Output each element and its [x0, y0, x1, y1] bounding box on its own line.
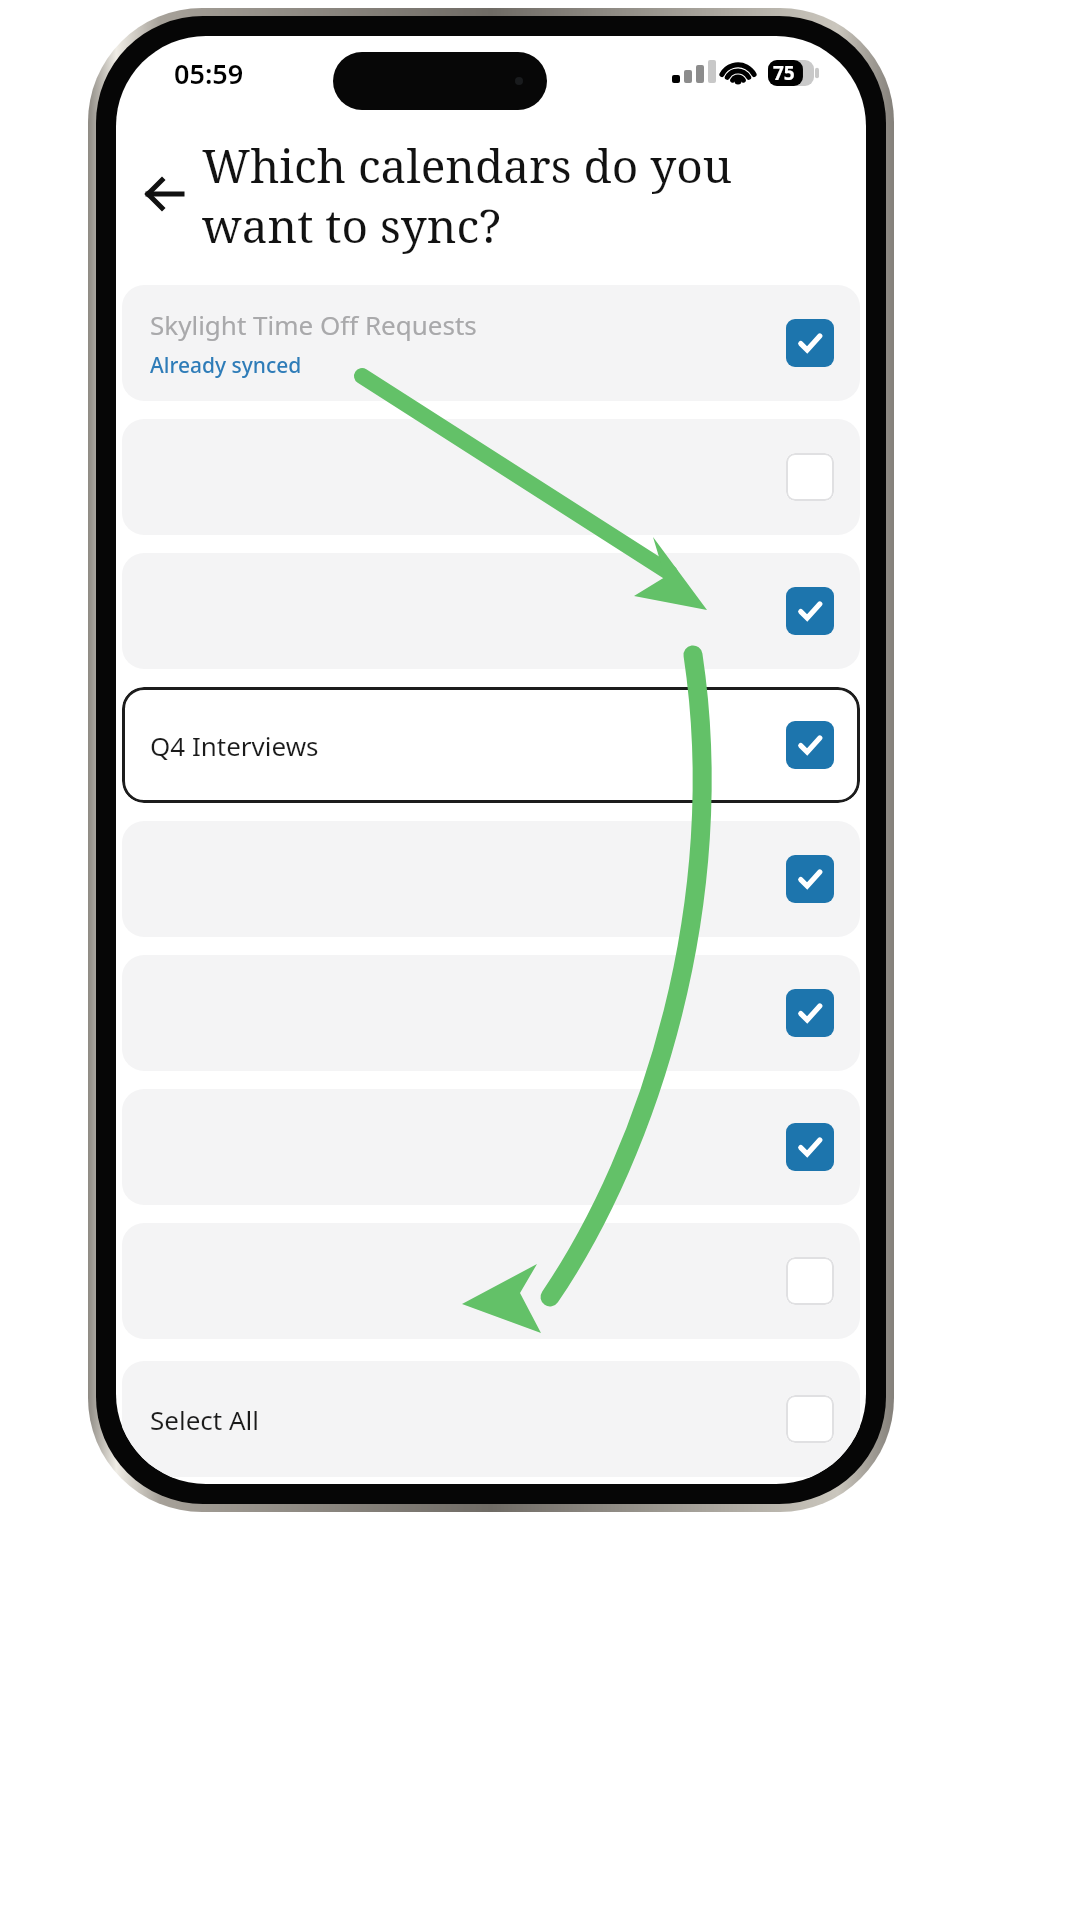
staticText: 75 [773, 60, 795, 86]
button[interactable]: Skylight Time Off Requests [122, 285, 860, 401]
button[interactable]: Unchecked [786, 1257, 834, 1305]
button[interactable]: Checked [122, 821, 860, 937]
button[interactable]: Checked [122, 1089, 860, 1205]
button[interactable]: Checked [122, 553, 860, 669]
button[interactable]: Checked [786, 721, 834, 769]
staticText: Select All [150, 1402, 259, 1437]
button[interactable]: Checked [786, 319, 834, 367]
staticText: 05:59 [174, 55, 244, 92]
button[interactable]: Checked [122, 955, 860, 1071]
button[interactable]: Checked [786, 1123, 834, 1171]
button[interactable]: Unchecked [786, 1395, 834, 1443]
button[interactable]: Checked [786, 989, 834, 1037]
button[interactable]: Checked [786, 855, 834, 903]
staticText: Skylight Time Off Requests [150, 307, 477, 342]
button[interactable]: Unchecked [122, 419, 860, 535]
staticText: Which calendars do you want to sync? [202, 134, 840, 257]
button[interactable]: Select All [122, 1361, 860, 1477]
staticText: Q4 Interviews [150, 728, 786, 763]
staticText: Already synced [150, 351, 302, 380]
button[interactable]: Q4 Interviews [122, 687, 860, 803]
button[interactable]: Back [126, 156, 202, 232]
button[interactable]: Unchecked [786, 453, 834, 501]
button[interactable]: Checked [786, 587, 834, 635]
button[interactable]: Unchecked [122, 1223, 860, 1339]
